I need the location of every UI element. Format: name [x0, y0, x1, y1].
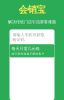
staticText: 解决传统门店引流获客难题 — [8, 19, 56, 24]
button[interactable]: 每天只需几元钱 — [9, 44, 54, 57]
staticText: 就可获得源源不断的客户 — [11, 52, 44, 55]
staticText: 每天只需几元钱 — [11, 46, 39, 51]
staticText: 会销宝 — [18, 4, 45, 15]
staticText: 请输入手机号获取验证码 — [12, 32, 44, 42]
